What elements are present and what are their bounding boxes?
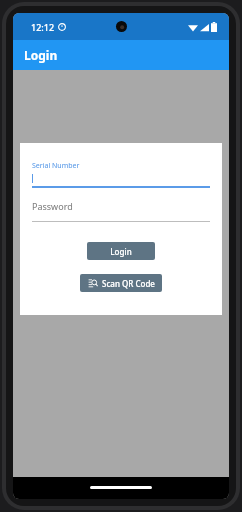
button[interactable]: Login xyxy=(87,242,155,260)
staticText: Password xyxy=(32,200,73,212)
staticText: 12:12 xyxy=(31,21,55,33)
staticText: Serial Number xyxy=(32,161,80,171)
button[interactable]: Password xyxy=(32,200,210,222)
button[interactable]: Home xyxy=(90,486,152,489)
staticText: Login xyxy=(24,47,58,63)
staticText: Login xyxy=(110,246,132,257)
staticText: Scan QR Code xyxy=(102,278,155,289)
button[interactable]: Scan QR Code xyxy=(80,274,162,292)
